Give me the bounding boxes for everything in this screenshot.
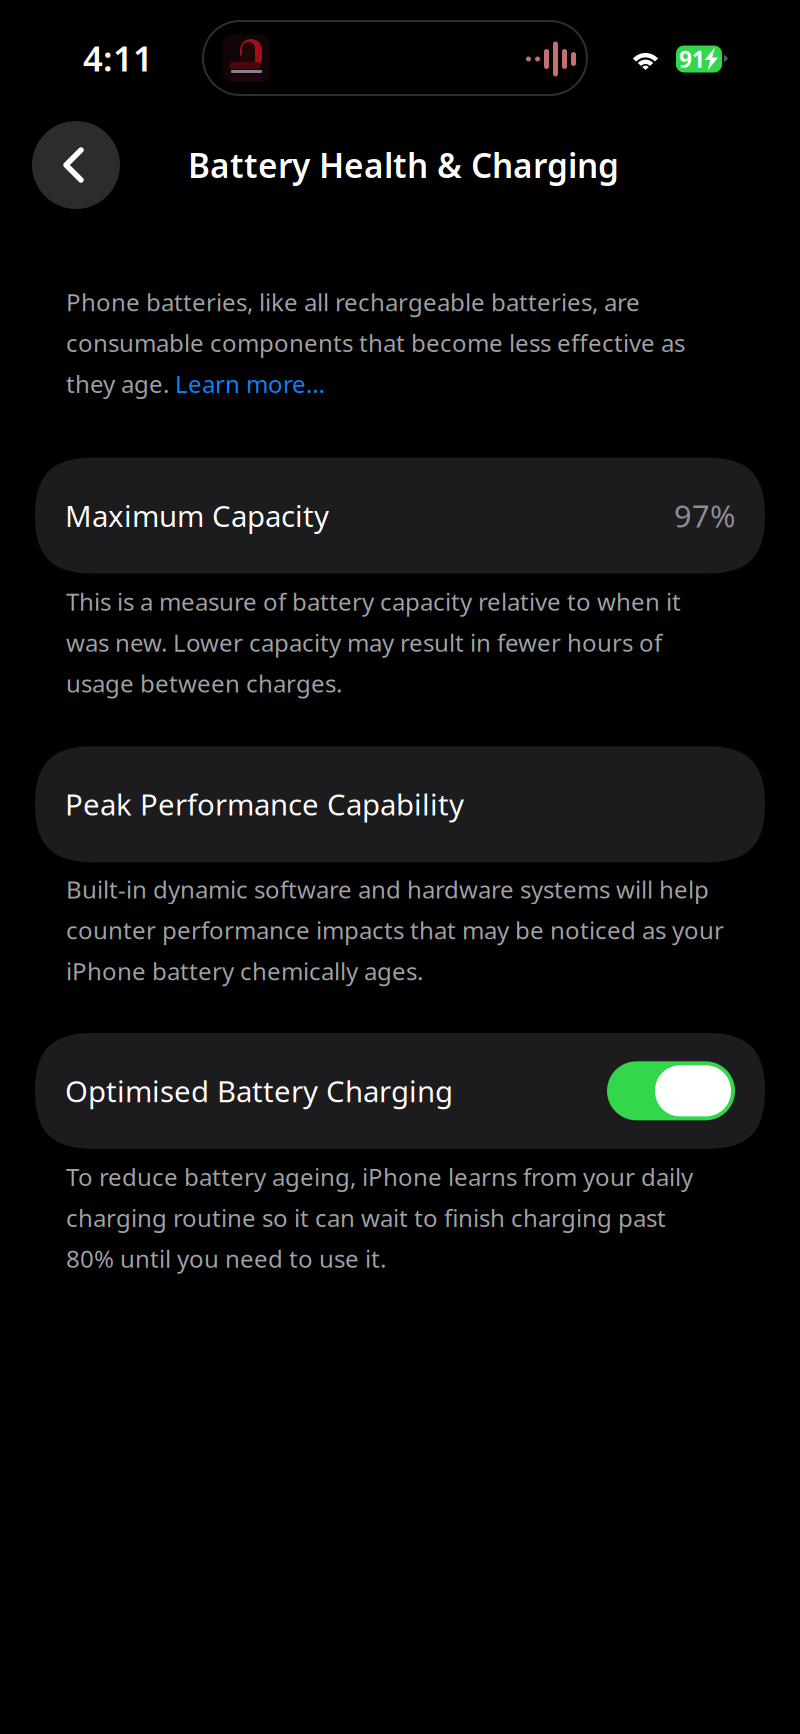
button[interactable]: Peak Performance Capability bbox=[0, 746, 765, 862]
staticText: Optimised Battery Charging bbox=[65, 1071, 453, 1110]
staticText: Built-in dynamic software and hardware s… bbox=[66, 873, 724, 987]
staticText: Battery Health & Charging bbox=[188, 143, 619, 187]
staticText: 91 bbox=[679, 44, 705, 74]
staticText: This is a measure of battery capacity re… bbox=[66, 586, 681, 699]
button[interactable]: Back bbox=[32, 121, 120, 209]
staticText: Peak Performance Capability bbox=[65, 785, 464, 824]
staticText: To reduce battery ageing, iPhone learns … bbox=[66, 1161, 693, 1274]
staticText: 4:11 bbox=[83, 35, 153, 81]
staticText: Phone batteries, like all rechargeable b… bbox=[66, 286, 685, 400]
staticText: 97% bbox=[674, 495, 735, 536]
button[interactable]: Optimised Battery Charging bbox=[607, 1061, 735, 1120]
staticText: Maximum Capacity bbox=[65, 496, 329, 535]
